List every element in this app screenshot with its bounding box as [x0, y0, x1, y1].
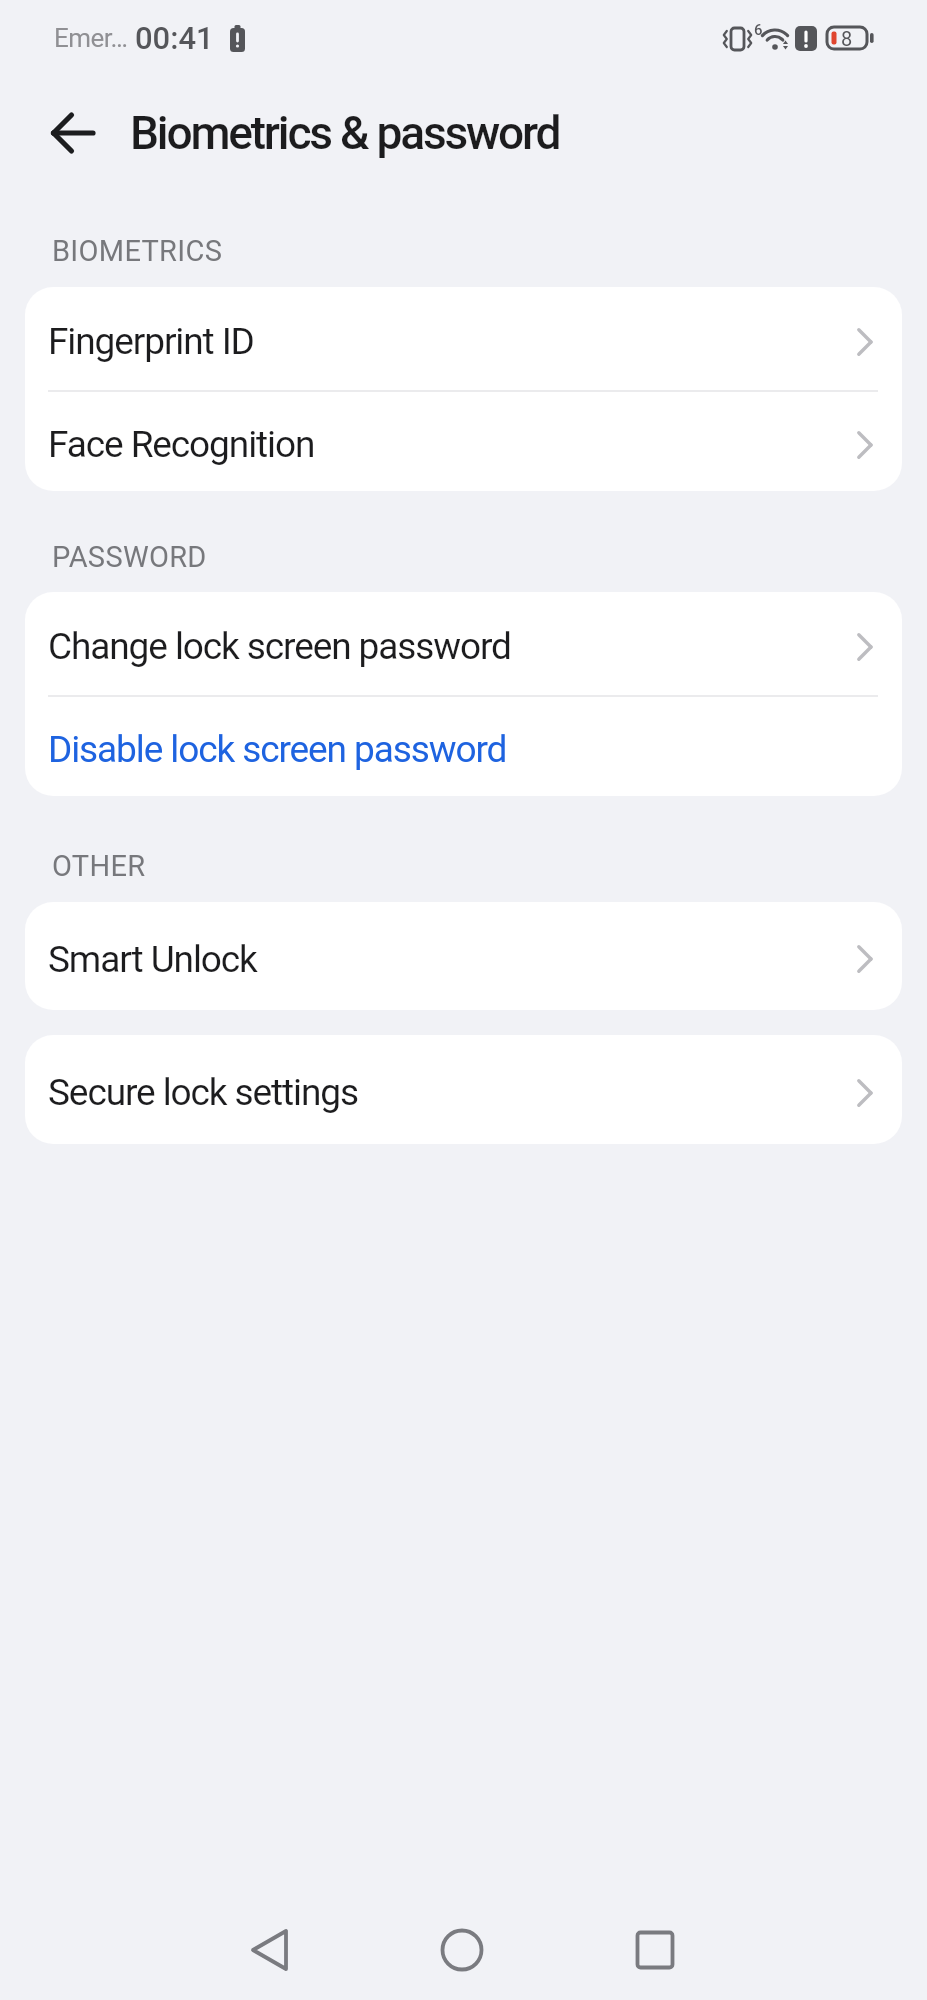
staticText: 6 — [754, 21, 763, 39]
button[interactable]: Fingerprint ID — [25, 287, 902, 390]
button[interactable]: Face Recognition — [25, 392, 902, 491]
button[interactable] — [630, 1925, 680, 1975]
button[interactable] — [40, 100, 106, 166]
button[interactable]: Smart Unlock — [25, 902, 902, 1010]
staticText: Change lock screen password — [48, 625, 511, 668]
staticText: Secure lock settings — [48, 1071, 358, 1114]
staticText: PASSWORD — [52, 540, 207, 574]
button[interactable]: Change lock screen password — [25, 592, 902, 695]
staticText: 00:41 — [135, 20, 214, 56]
staticText: Fingerprint ID — [48, 320, 254, 363]
button[interactable] — [437, 1925, 487, 1975]
staticText: BIOMETRICS — [52, 234, 223, 268]
staticText: Disable lock screen password — [48, 728, 507, 771]
staticText: Biometrics & password — [130, 106, 560, 160]
button[interactable]: Disable lock screen password — [25, 697, 902, 796]
button[interactable] — [245, 1925, 295, 1975]
staticText: Face Recognition — [48, 423, 315, 466]
staticText: Emer… — [54, 23, 128, 53]
button[interactable]: Secure lock settings — [25, 1035, 902, 1144]
staticText: 8 — [841, 27, 853, 50]
staticText: OTHER — [52, 849, 146, 883]
staticText: Smart Unlock — [48, 938, 257, 981]
